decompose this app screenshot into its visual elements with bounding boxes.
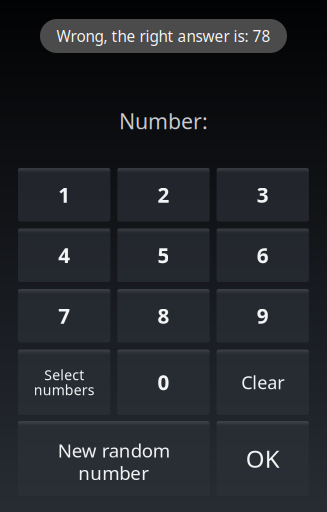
button[interactable]: 2 xyxy=(117,168,210,221)
button[interactable]: 3 xyxy=(217,168,309,221)
button[interactable]: 6 xyxy=(217,228,309,282)
staticText: Clear xyxy=(241,370,284,394)
staticText: 4 xyxy=(58,241,70,269)
button[interactable]: 7 xyxy=(18,289,110,342)
staticText: 7 xyxy=(58,302,70,330)
button[interactable]: 4 xyxy=(18,228,110,282)
button[interactable]: Select numbers xyxy=(18,349,110,415)
staticText: 2 xyxy=(157,181,169,209)
button[interactable]: 8 xyxy=(117,289,210,342)
staticText: 5 xyxy=(157,241,169,269)
staticText: OK xyxy=(246,442,280,475)
staticText: 6 xyxy=(257,241,269,269)
button[interactable]: OK xyxy=(217,421,309,496)
staticText: numbers xyxy=(34,380,95,399)
button[interactable]: 0 xyxy=(117,349,210,415)
staticText: New random xyxy=(58,438,170,463)
button[interactable]: New random number xyxy=(18,421,210,496)
staticText: 3 xyxy=(257,181,269,209)
button[interactable]: 1 xyxy=(18,168,110,221)
staticText: 0 xyxy=(157,368,169,396)
staticText: 8 xyxy=(157,302,169,330)
staticText: Select xyxy=(44,365,84,384)
button[interactable]: Clear xyxy=(217,349,309,415)
staticText: 9 xyxy=(257,302,269,330)
staticText: Wrong, the right answer is: 78 xyxy=(56,26,270,46)
button[interactable]: 5 xyxy=(117,228,210,282)
staticText: number xyxy=(78,460,149,485)
staticText: Number: xyxy=(119,106,208,136)
button[interactable]: 9 xyxy=(217,289,309,342)
staticText: 1 xyxy=(58,181,70,209)
